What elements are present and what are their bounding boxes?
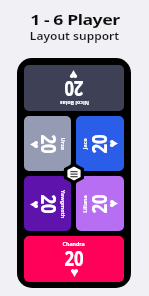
staticText: Chandra	[63, 240, 85, 248]
staticText: Yawgmoth	[59, 190, 67, 219]
staticText: 20	[63, 74, 83, 103]
button[interactable]: Jace	[76, 116, 124, 171]
staticText: 20	[85, 193, 114, 213]
staticText: 20	[34, 134, 63, 154]
button[interactable]: Chandra	[24, 236, 124, 282]
staticText: Urza	[59, 138, 67, 150]
button[interactable]: Nicol Bolas	[24, 65, 124, 111]
staticText: Jace	[81, 138, 89, 149]
button[interactable]: Menu	[64, 163, 84, 184]
staticText: 1 - 6 Player	[30, 9, 120, 29]
button[interactable]: Yawgmoth	[24, 176, 71, 231]
staticText: 20	[64, 244, 84, 273]
staticText: Nicol Bolas	[59, 99, 89, 107]
button[interactable]: Liliana	[76, 176, 124, 231]
button[interactable]: Urza	[24, 116, 71, 171]
staticText: 20	[34, 194, 63, 214]
staticText: Layout support	[29, 29, 119, 43]
staticText: 20	[85, 133, 114, 153]
staticText: Liliana	[81, 195, 89, 213]
